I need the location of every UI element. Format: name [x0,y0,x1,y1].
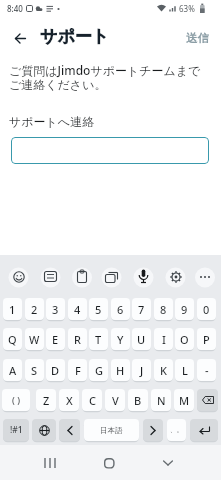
button[interactable]: P [197,328,216,350]
staticText: I [162,332,166,347]
staticText: J [140,363,144,378]
button[interactable]: O [175,328,194,350]
button[interactable] [97,452,121,474]
button[interactable]: 7 [132,298,151,320]
button[interactable] [190,419,218,441]
button[interactable] [8,26,32,50]
button[interactable]: D [46,359,65,381]
button[interactable]: !#1 [3,419,29,441]
button[interactable]: Q [3,328,22,350]
button[interactable]: L [175,359,194,381]
staticText: E [52,332,59,347]
button[interactable] [11,137,209,164]
staticText: U [137,332,146,347]
button[interactable]: 2 [25,298,44,320]
staticText: 日本語 [100,426,123,435]
staticText: X [66,393,73,408]
staticText: F [75,363,81,378]
button[interactable]: 8 [154,298,173,320]
button[interactable] [137,268,150,285]
button[interactable]: - [197,359,216,381]
button[interactable]: T [89,328,108,350]
button[interactable] [169,269,183,284]
staticText: 7 [138,302,145,317]
button[interactable]: 0 [197,298,216,320]
staticText: A [9,363,17,378]
button[interactable] [197,389,218,411]
button[interactable]: ( ) [2,389,30,411]
button[interactable] [32,419,56,441]
staticText: 8 [160,302,167,317]
button[interactable]: 5 [89,298,108,320]
staticText: 2 [31,302,38,317]
button[interactable]: B [128,389,148,411]
button[interactable] [143,419,163,441]
button[interactable]: 日本語 [84,419,139,441]
button[interactable]: W [25,328,44,350]
staticText: 、。 [170,426,183,434]
staticText: 5 [95,302,102,317]
staticText: 3 [52,302,59,317]
button[interactable]: 、。 [167,419,186,441]
staticText: T [95,332,102,347]
button[interactable]: V [105,389,125,411]
button[interactable] [104,270,119,284]
staticText: - [205,363,209,378]
button[interactable]: A [3,359,22,381]
button[interactable] [198,272,212,282]
staticText: 送信 [186,31,209,45]
staticText: ( ) [12,394,20,406]
staticText: 8:40 [7,3,23,14]
button[interactable]: I [154,328,173,350]
button[interactable]: Y [111,328,130,350]
button[interactable]: M [174,389,194,411]
button[interactable]: S [25,359,44,381]
button[interactable]: Z [36,389,56,411]
button[interactable]: K [154,359,173,381]
button[interactable]: X [59,389,79,411]
button[interactable] [38,452,62,474]
staticText: Y [117,332,124,347]
staticText: W [29,332,40,347]
button[interactable]: N [151,389,171,411]
staticText: 9 [181,302,188,317]
button[interactable] [59,419,80,441]
button[interactable]: C [82,389,102,411]
staticText: !#1 [10,424,23,436]
button[interactable]: 9 [175,298,194,320]
staticText: P [203,332,210,347]
staticText: N [157,393,166,408]
button[interactable]: R [68,328,87,350]
staticText: M [179,393,190,408]
staticText: 1 [9,302,16,317]
staticText: S [31,363,38,378]
staticText: サポートへ連絡 [9,114,95,129]
button[interactable] [11,269,26,284]
button[interactable] [43,270,58,283]
button[interactable]: H [111,359,130,381]
staticText: K [160,363,167,378]
button[interactable]: 3 [46,298,65,320]
staticText: G [95,363,103,378]
button[interactable]: 送信 [180,25,214,51]
staticText: 63% [179,3,195,14]
staticText: B [134,393,142,408]
staticText: ご連絡ください。 [9,77,107,92]
button[interactable] [75,269,89,284]
button[interactable] [156,452,180,474]
staticText: C [89,393,96,408]
staticText: V [112,393,119,408]
button[interactable]: U [132,328,151,350]
button[interactable]: F [68,359,87,381]
button[interactable]: 1 [3,298,22,320]
button[interactable]: E [46,328,65,350]
staticText: ご質問はJimdoサポートチームまで [9,62,201,78]
button[interactable]: J [132,359,151,381]
staticText: O [180,332,189,347]
button[interactable]: 6 [111,298,130,320]
staticText: 6 [117,302,124,317]
button[interactable]: G [89,359,108,381]
staticText: Q [8,332,17,347]
staticText: L [182,363,188,378]
button[interactable]: 4 [68,298,87,320]
